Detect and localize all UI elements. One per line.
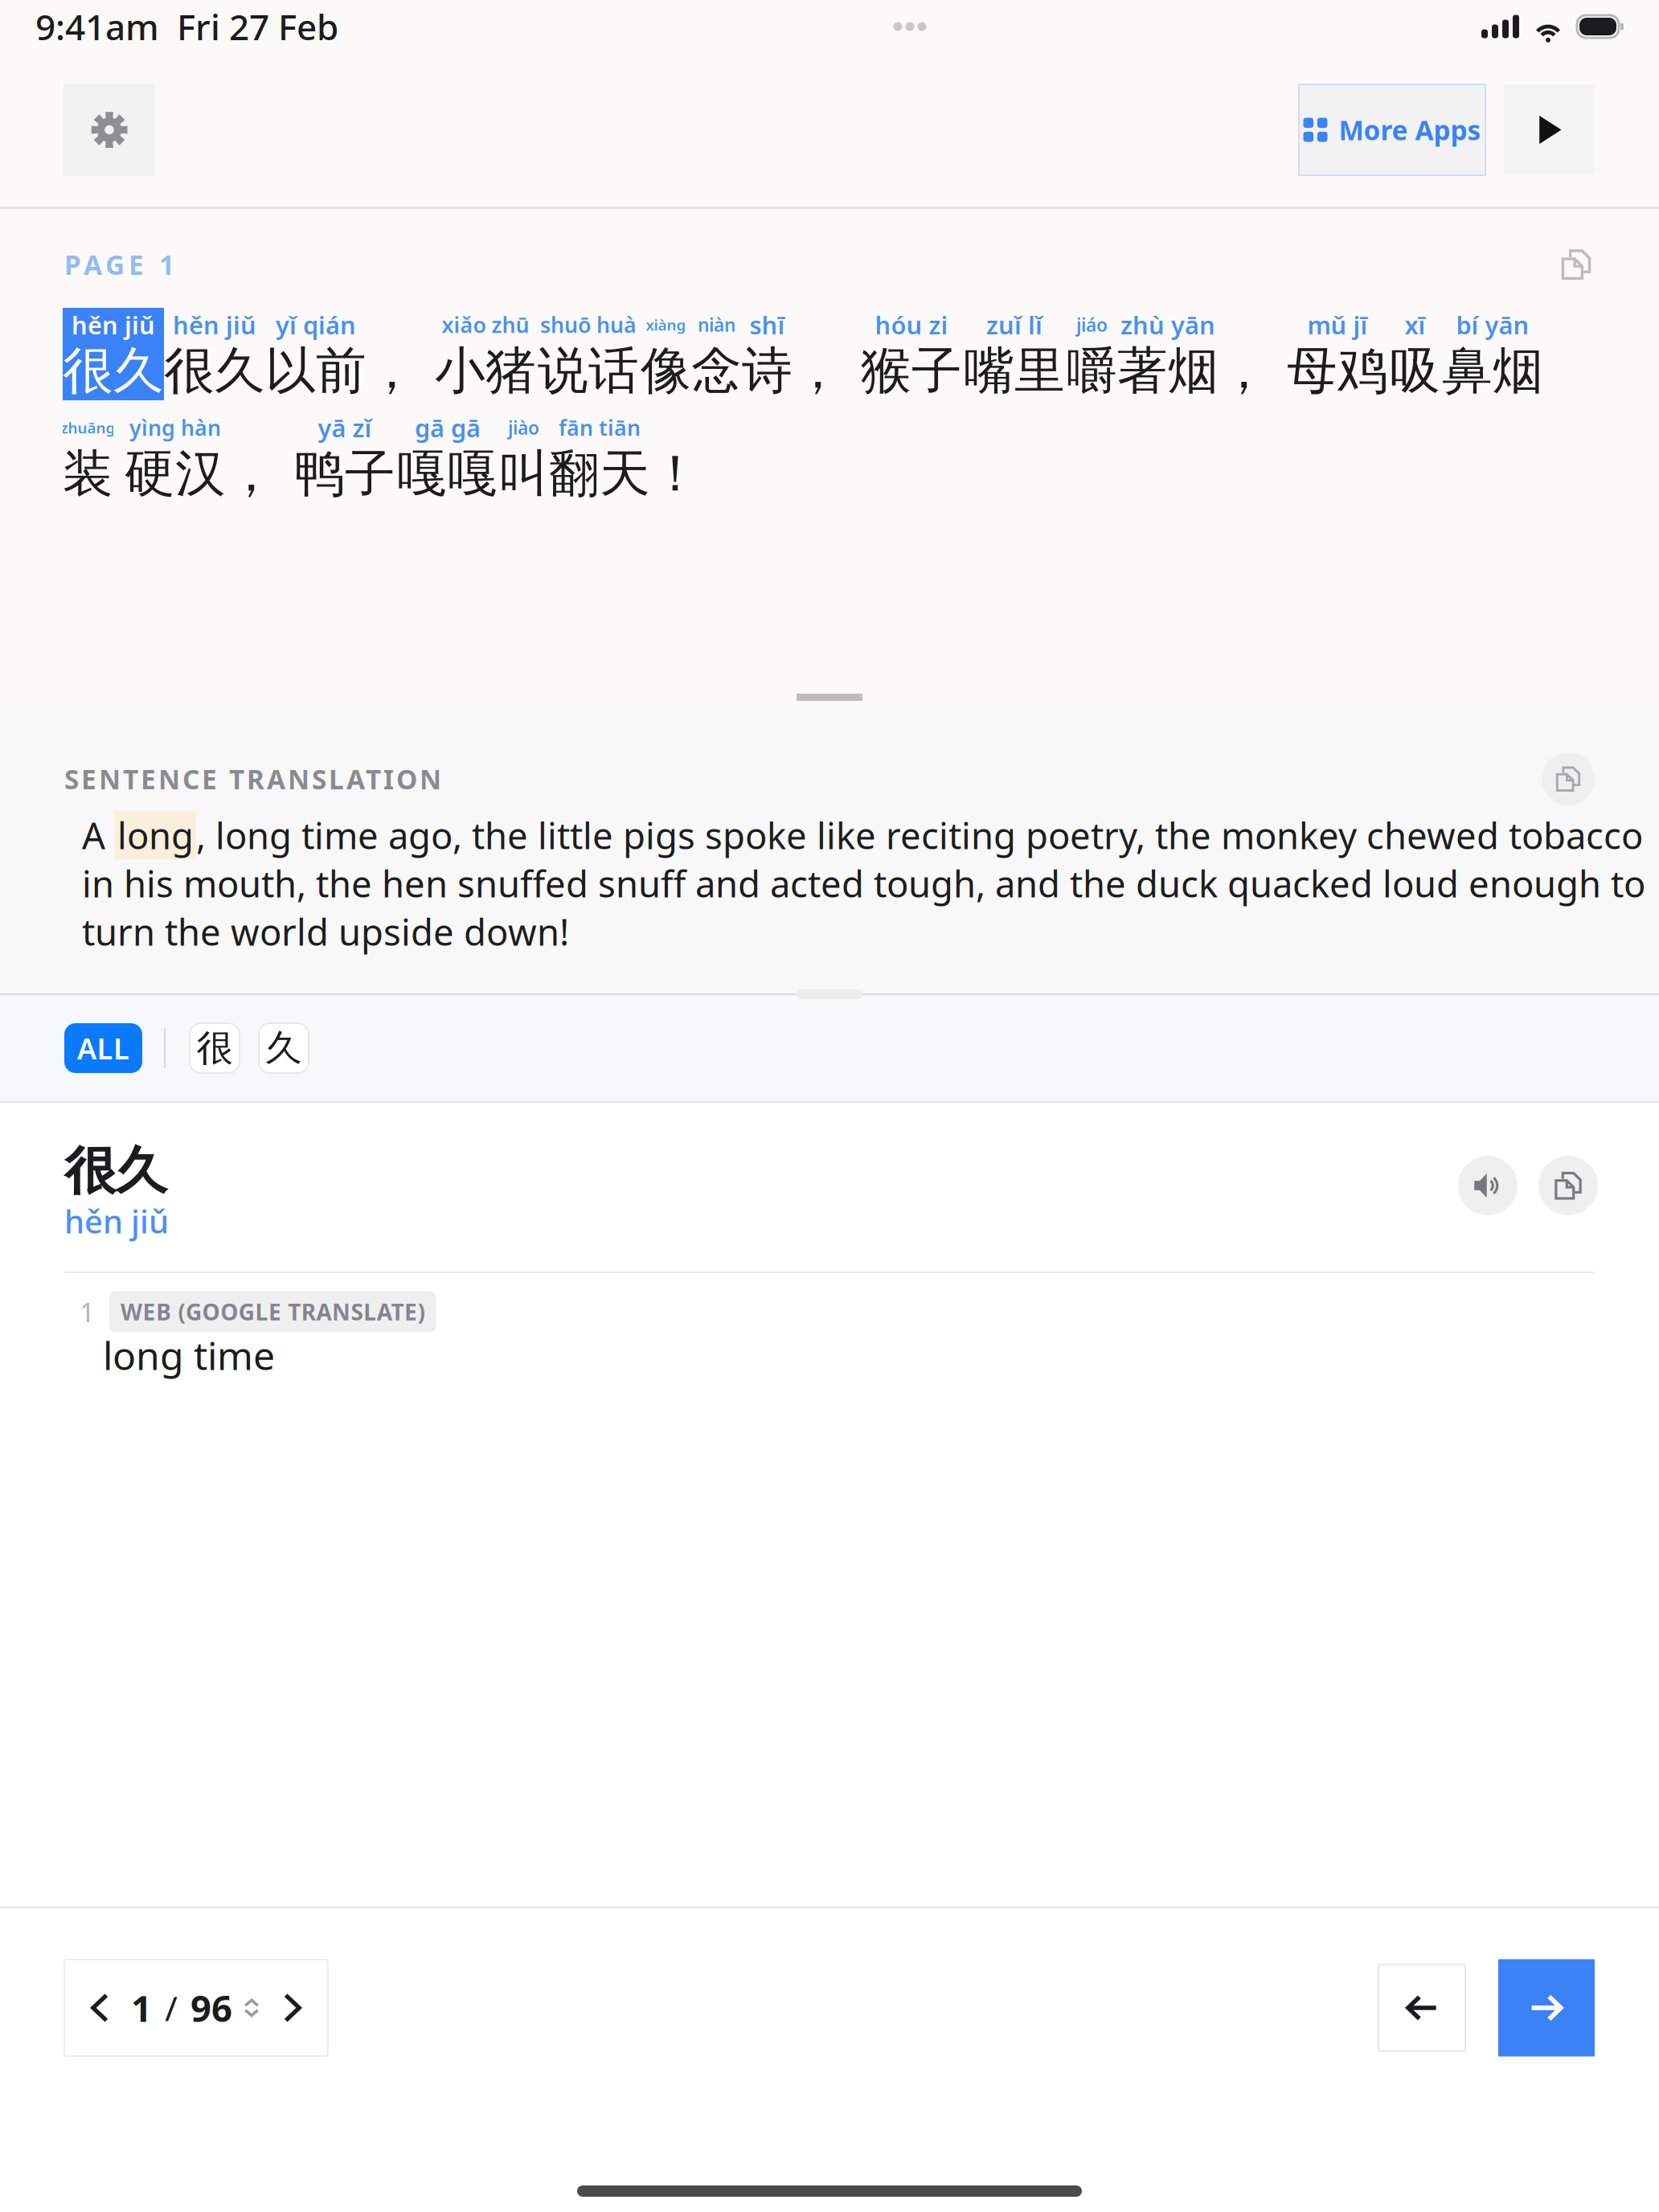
staticText: ， <box>1219 340 1269 402</box>
staticText: long time <box>103 1330 275 1381</box>
staticText: xiǎo zhū <box>442 310 529 339</box>
staticText: WEB (GOOGLE TRANSLATE) <box>121 1297 425 1327</box>
staticText: zhuāng <box>61 418 115 438</box>
staticText: hěn jiǔ <box>72 308 155 341</box>
staticText: gā gā <box>415 411 481 444</box>
staticText: 久 <box>215 340 265 402</box>
staticText: 嘎 <box>397 443 448 505</box>
staticText: 前 <box>316 340 367 402</box>
staticText: 装 <box>63 443 113 505</box>
staticText: 烟 <box>1493 340 1543 402</box>
staticText: 诗 <box>742 340 793 402</box>
button[interactable]: 久 <box>259 1023 309 1073</box>
staticText: zhù <box>1120 308 1165 341</box>
staticText: shuō huà <box>540 310 637 339</box>
staticText: turn the world upside down! <box>82 907 569 956</box>
staticText: zuǐ lǐ <box>986 308 1043 341</box>
staticText: shī <box>750 308 785 341</box>
staticText: yān <box>1171 308 1215 341</box>
staticText: niàn <box>698 313 735 337</box>
staticText: 子 <box>911 340 962 402</box>
staticText: , long time ago, the little pigs spoke l… <box>196 811 1643 859</box>
button[interactable]: Settings <box>63 84 155 176</box>
staticText: in his mouth, the hen snuffed snuff and … <box>82 859 1645 908</box>
button[interactable]: Play pronunciation <box>1458 1156 1518 1215</box>
button[interactable]: Copy translation <box>1542 752 1595 805</box>
staticText: Fri 27 Feb <box>177 3 338 50</box>
staticText: SENTENCE TRANSLATION <box>64 761 441 797</box>
staticText: bí yān <box>1456 308 1529 341</box>
staticText: ALL <box>77 1029 129 1067</box>
staticText: 嘴 <box>964 340 1014 402</box>
staticText: xiàng <box>646 315 686 335</box>
staticText: 9:41am <box>35 3 159 50</box>
staticText: ！ <box>650 443 701 505</box>
staticText: 很 <box>164 340 215 402</box>
staticText: 很 <box>197 1026 233 1071</box>
staticText: 嘎 <box>448 443 498 505</box>
staticText: 96 <box>190 1984 232 2032</box>
staticText: mǔ jī <box>1307 308 1368 341</box>
staticText: More Apps <box>1339 112 1481 148</box>
staticText: 鼻 <box>1442 340 1493 402</box>
staticText: 很 <box>63 340 113 402</box>
staticText: long <box>117 811 194 859</box>
staticText: 嚼 <box>1067 340 1117 402</box>
staticText: 久 <box>266 1026 302 1071</box>
staticText: hěn jiǔ <box>64 1200 169 1242</box>
button[interactable]: Play <box>1504 84 1595 175</box>
button[interactable]: ALL <box>64 1023 142 1073</box>
staticText: 说 <box>538 340 588 402</box>
staticText: jiào <box>508 415 539 440</box>
staticText: 1 <box>80 1294 95 1330</box>
staticText: 母 <box>1287 340 1337 402</box>
staticText: yā zǐ <box>318 411 372 444</box>
button[interactable]: Previous <box>1378 1964 1465 2051</box>
staticText: 著 <box>1117 340 1168 402</box>
staticText: 硬 <box>125 443 175 505</box>
staticText: 猴 <box>861 340 911 402</box>
staticText: 里 <box>1014 340 1065 402</box>
staticText: 叫 <box>498 443 549 505</box>
staticText: yǐ qián <box>276 308 356 341</box>
staticText: 久 <box>113 340 164 402</box>
button[interactable]: 1 <box>64 1960 328 2056</box>
staticText: xī <box>1405 308 1426 341</box>
staticText: 翻 <box>549 443 600 505</box>
staticText: 烟 <box>1168 340 1219 402</box>
staticText: 猪 <box>485 340 536 402</box>
staticText: yìng hàn <box>129 413 221 442</box>
staticText: 念 <box>691 340 742 402</box>
staticText: jiáo <box>1076 313 1108 337</box>
staticText: 很久 <box>64 1140 167 1203</box>
staticText: 鸡 <box>1337 340 1388 402</box>
staticText: 小 <box>435 340 485 402</box>
button[interactable]: Next <box>1498 1959 1595 2056</box>
button[interactable]: More Apps <box>1299 84 1485 175</box>
staticText: 汉 <box>175 443 226 505</box>
staticText: 天 <box>600 443 650 505</box>
staticText: 话 <box>588 340 639 402</box>
button[interactable]: Copy word <box>1538 1156 1598 1215</box>
staticText: hěn jiǔ <box>173 308 256 341</box>
staticText: A <box>82 811 115 859</box>
staticText: hóu zi <box>875 308 948 341</box>
staticText: / <box>165 1985 178 2031</box>
staticText: 像 <box>641 340 691 402</box>
staticText: 鸭 <box>294 443 345 505</box>
staticText: fān tiān <box>559 413 641 442</box>
button[interactable]: Copy sentence <box>1558 246 1595 283</box>
staticText: ， <box>793 340 843 402</box>
button[interactable]: 很 <box>190 1023 240 1073</box>
staticText: 以 <box>265 340 316 402</box>
staticText: 1 <box>131 1984 152 2032</box>
staticText: ， <box>226 443 276 505</box>
staticText: 吸 <box>1390 340 1440 402</box>
staticText: 子 <box>345 443 395 505</box>
staticText: PAGE 1 <box>64 247 174 282</box>
staticText: ， <box>367 340 417 402</box>
